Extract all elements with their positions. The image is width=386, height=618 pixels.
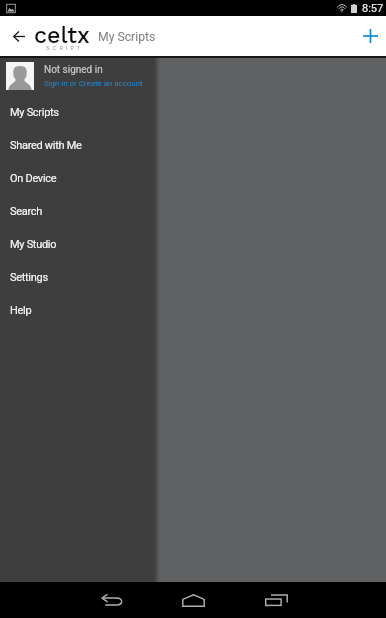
staticText: Search <box>10 205 42 218</box>
button[interactable]: Shared with Me <box>0 129 154 162</box>
button[interactable]: Recent apps <box>258 582 294 618</box>
staticText: Help <box>10 304 32 317</box>
staticText: My Scripts <box>98 30 156 44</box>
staticText: My Studio <box>10 238 57 251</box>
button[interactable]: Settings <box>0 261 154 294</box>
staticText: Not signed in <box>44 64 103 76</box>
staticText: On Device <box>10 172 57 185</box>
button[interactable]: My Studio <box>0 228 154 261</box>
staticText: My Scripts <box>10 106 59 119</box>
button[interactable]: Back <box>5 16 33 56</box>
staticText: Sign in or Create an account <box>44 79 143 88</box>
staticText: SCRIPT <box>46 44 83 51</box>
button[interactable]: Not signed in <box>0 58 154 94</box>
button[interactable]: Search <box>0 195 154 228</box>
staticText: Settings <box>10 271 48 284</box>
button[interactable]: On Device <box>0 162 154 195</box>
button[interactable]: Add new script <box>354 20 386 52</box>
staticText: celtx <box>34 21 90 48</box>
button[interactable]: Help <box>0 294 154 327</box>
button[interactable]: Home <box>175 582 211 618</box>
button[interactable]: Back <box>93 582 130 618</box>
button[interactable]: My Scripts <box>0 96 154 129</box>
staticText: 8:57 <box>362 2 384 15</box>
staticText: Shared with Me <box>10 139 82 152</box>
